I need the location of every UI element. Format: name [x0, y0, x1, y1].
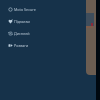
staticText: Дисплей [14, 31, 30, 36]
staticText: Підказки [14, 19, 30, 24]
button[interactable]: Підказки [8, 15, 46, 27]
button[interactable]: Moto Secure [8, 3, 46, 15]
staticText: Розваги [14, 43, 29, 48]
button[interactable]: Дисплей [8, 27, 46, 39]
button[interactable]: Розваги [8, 39, 46, 51]
staticText: Moto Secure [14, 7, 36, 12]
